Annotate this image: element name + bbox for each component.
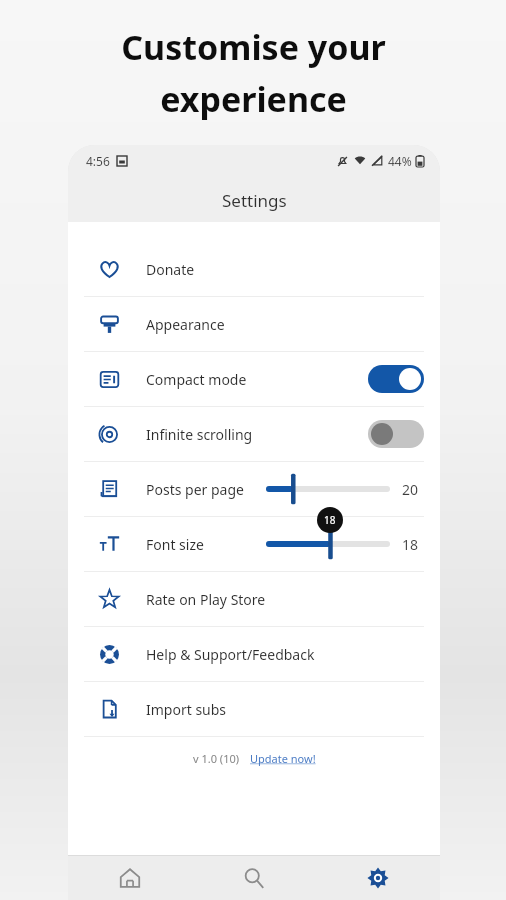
staticText: Compact mode [146,370,247,389]
staticText: Infinite scrolling [146,425,253,444]
staticText: Appearance [146,315,225,334]
button[interactable]: Rate on Play Store [68,572,440,626]
button[interactable]: Home [68,856,192,900]
staticText: Help & Support/Feedback [146,645,315,664]
button[interactable]: Update now! [250,751,316,766]
staticText: 4:56 [86,153,110,169]
button[interactable]: Help & Support/Feedback [68,627,440,681]
button[interactable]: Toggle off [368,420,424,448]
staticText: 20 [402,480,419,499]
button[interactable]: Slider 20 [266,472,390,506]
staticText: Rate on Play Store [146,590,266,609]
button[interactable]: Import subs [68,682,440,736]
staticText: 18 [402,535,419,554]
staticText: v 1.0 (10) [193,751,240,766]
staticText: Import subs [146,700,227,719]
button[interactable]: Posts per page [68,462,440,516]
button[interactable]: Compact mode [68,352,440,406]
staticText: Font size [146,535,204,554]
staticText: Settings [222,189,287,212]
staticText: experience [160,76,347,122]
staticText: Customise your [121,24,386,70]
staticText: Update now! [250,751,316,766]
staticText: Donate [146,260,195,279]
button[interactable]: Appearance [68,297,440,351]
button[interactable]: Donate [68,242,440,296]
button[interactable]: Settings [316,856,440,900]
button[interactable]: Infinite scrolling [68,407,440,461]
button[interactable]: Search [192,856,316,900]
staticText: 44% [388,153,412,169]
staticText: Posts per page [146,480,244,499]
button[interactable]: Toggle on [368,365,424,393]
button[interactable]: Font size [68,517,440,571]
staticText: 18 [324,513,336,527]
button[interactable]: Slider 18 [266,527,390,561]
